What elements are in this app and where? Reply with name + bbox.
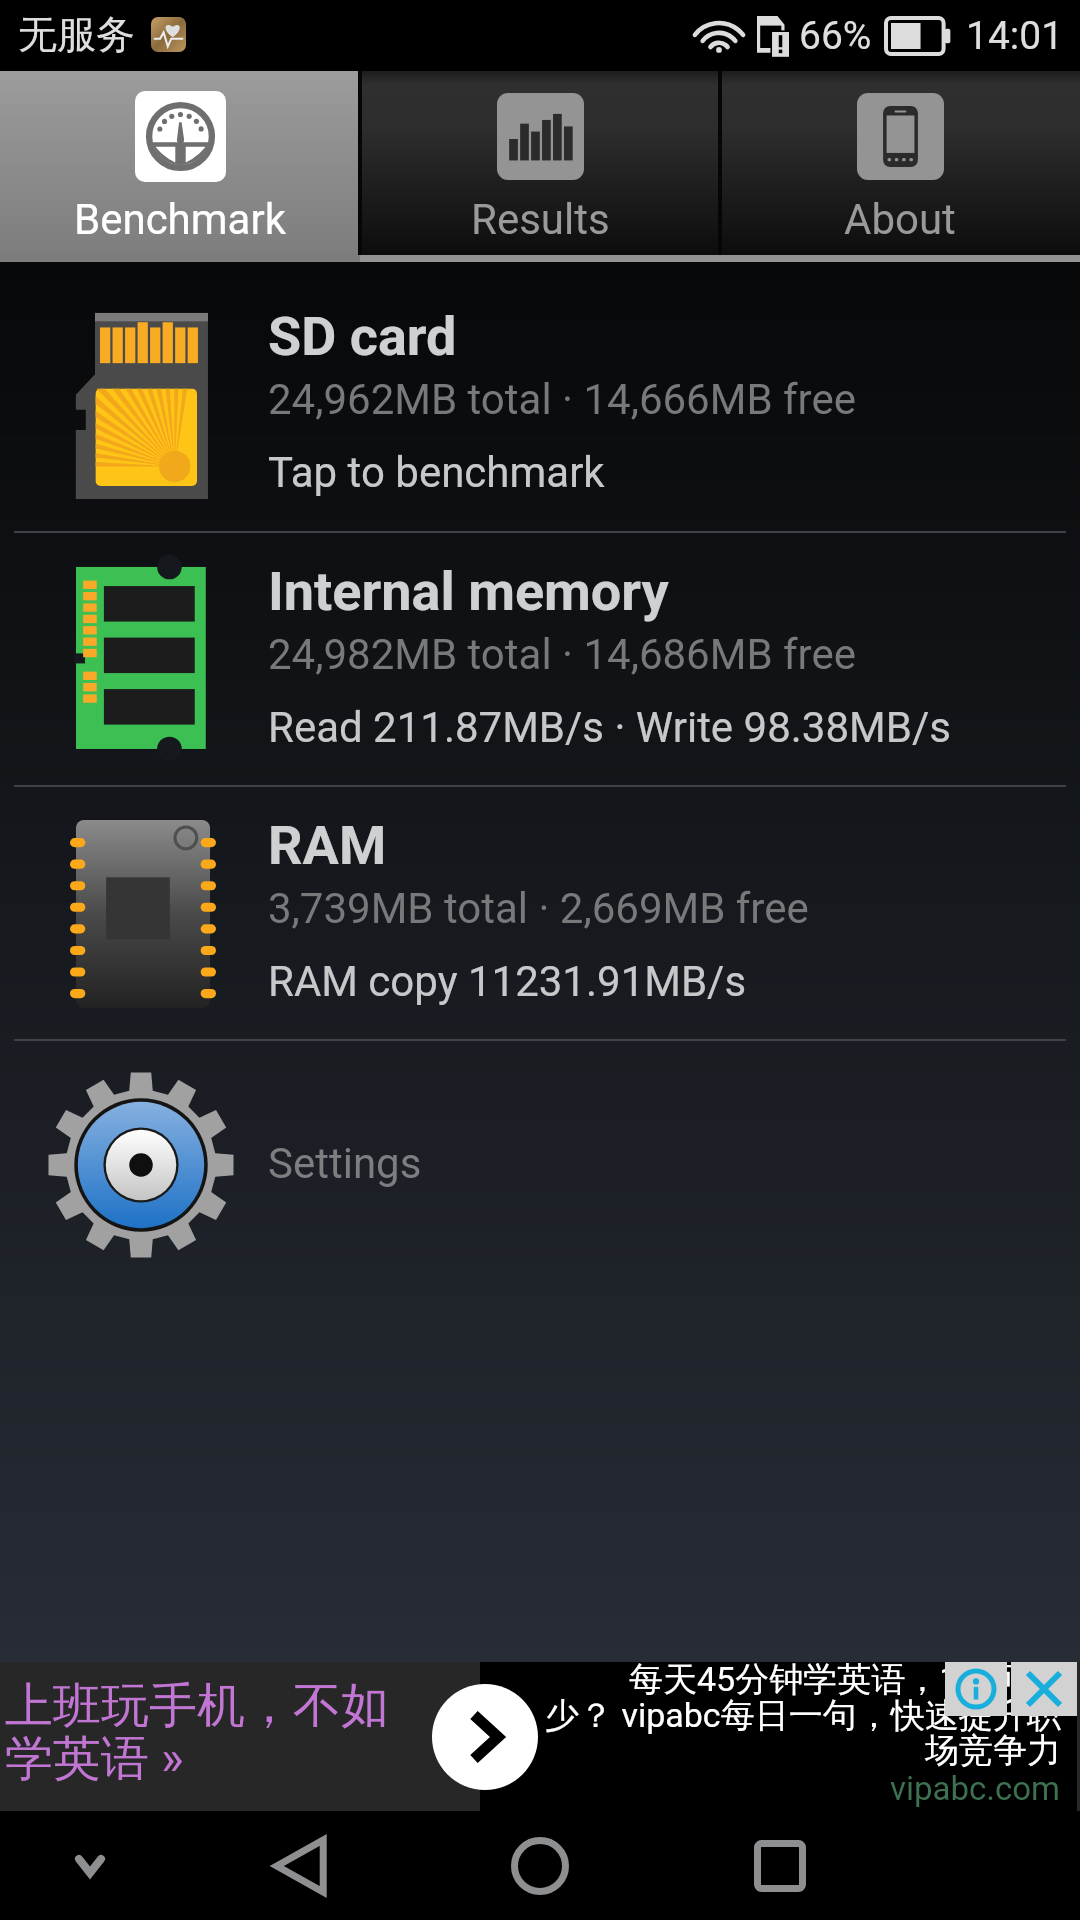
button[interactable]: Benchmark	[0, 71, 360, 262]
staticText: 少？ vipabc每日一句，快速提升职	[545, 1694, 1061, 1737]
button[interactable]: Recent apps	[710, 1811, 850, 1920]
button[interactable]: Internal memory	[0, 532, 1080, 785]
button[interactable]: Hide keyboard	[20, 1811, 160, 1920]
staticText: Read 211.87MB/s · Write 98.38MB/s	[268, 703, 951, 752]
staticText: About	[844, 195, 956, 244]
staticText: SD card	[268, 305, 457, 368]
staticText: 场竞争力	[925, 1729, 1061, 1772]
button[interactable]: Home	[470, 1811, 610, 1920]
button[interactable]: Back	[230, 1811, 370, 1920]
staticText: 66%	[799, 13, 872, 59]
button[interactable]: 上班玩手机，不如	[0, 1662, 1080, 1811]
button[interactable]: Ad information	[945, 1662, 1007, 1716]
staticText: 学英语 »	[5, 1729, 184, 1789]
staticText: 上班玩手机，不如	[5, 1676, 389, 1736]
staticText: Tap to benchmark	[268, 448, 605, 497]
staticText: 24,962MB total · 14,666MB free	[268, 375, 856, 424]
button[interactable]: About	[720, 71, 1080, 262]
button[interactable]: Close ad	[1011, 1662, 1077, 1716]
staticText: Benchmark	[74, 195, 286, 244]
button[interactable]: SD card	[0, 262, 1080, 531]
button[interactable]: RAM	[0, 786, 1080, 1039]
staticText: RAM copy 11231.91MB/s	[268, 957, 747, 1006]
button[interactable]: Results	[360, 71, 720, 262]
staticText: vipabc.com	[890, 1769, 1061, 1808]
staticText: RAM	[268, 814, 387, 877]
staticText: 无服务	[18, 10, 135, 59]
staticText: 24,982MB total · 14,686MB free	[268, 630, 856, 679]
button[interactable]: Open advertisement	[432, 1684, 538, 1790]
button[interactable]: Settings	[0, 1040, 1080, 1290]
staticText: 14:01	[966, 13, 1064, 59]
staticText: Settings	[268, 1139, 422, 1188]
staticText: 3,739MB total · 2,669MB free	[268, 884, 809, 933]
staticText: Internal memory	[268, 560, 669, 623]
staticText: Results	[471, 195, 610, 244]
staticText: 每天45分钟学英语，1年可以	[629, 1658, 1061, 1701]
